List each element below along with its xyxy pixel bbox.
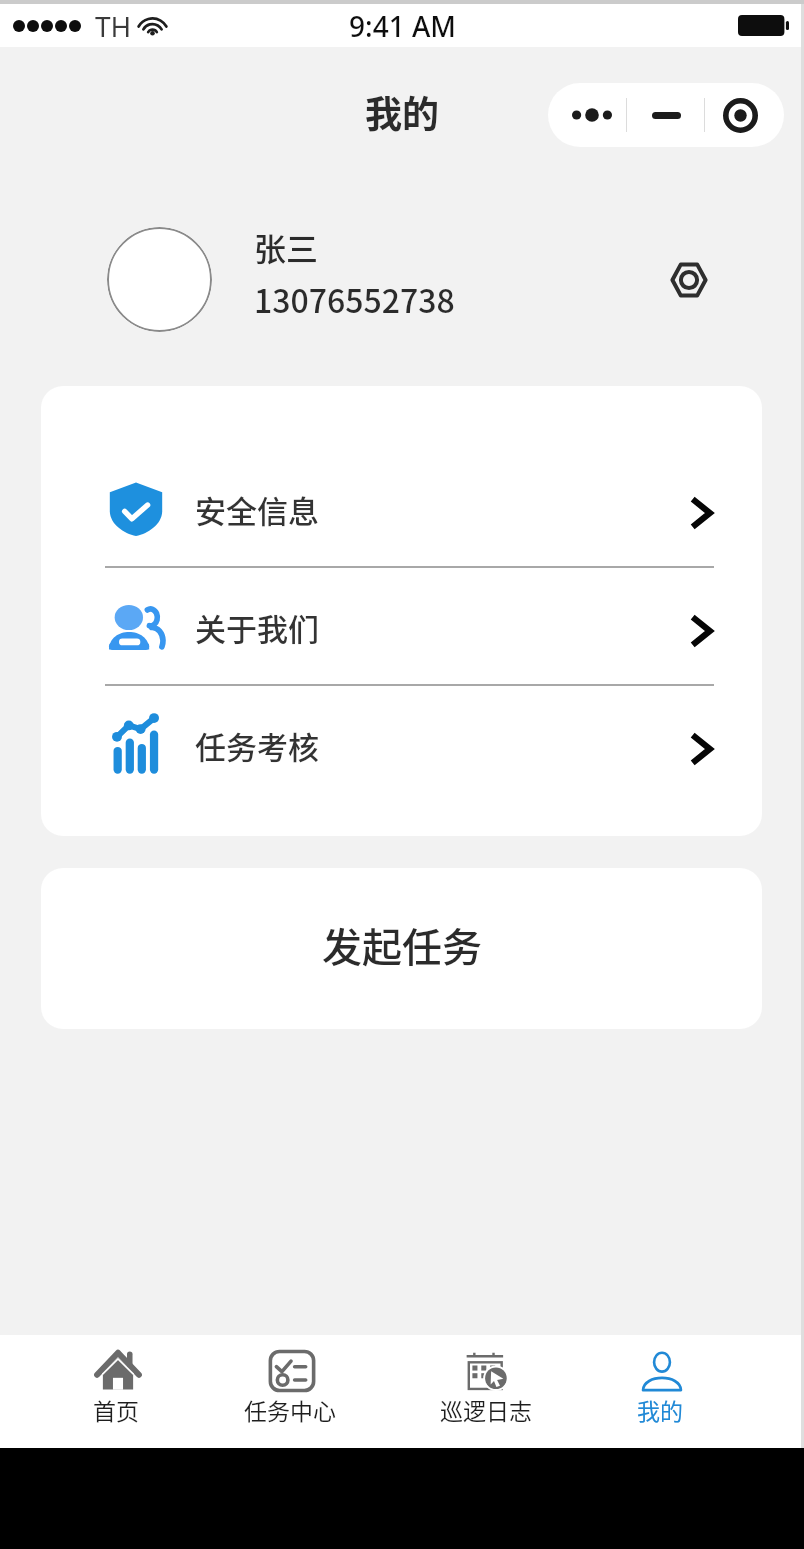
staticText: 安全信息 <box>195 487 319 532</box>
button[interactable]: More options <box>548 83 626 147</box>
staticText: 我的 <box>365 85 439 139</box>
button[interactable]: Home <box>41 1335 191 1448</box>
button[interactable]: Settings <box>651 244 723 316</box>
button[interactable]: Mine <box>585 1335 735 1448</box>
staticText: 任务中心 <box>244 1393 336 1426</box>
staticText: 13076552738 <box>254 276 455 322</box>
staticText: 我的 <box>637 1393 683 1426</box>
button[interactable]: Task center <box>215 1335 365 1448</box>
staticText: 发起任务 <box>322 916 482 974</box>
staticText: 9:41 AM <box>349 7 456 45</box>
staticText: TH <box>95 7 132 45</box>
staticText: 关于我们 <box>195 605 319 650</box>
staticText: 任务考核 <box>195 723 319 768</box>
button[interactable]: Minimize <box>627 83 705 147</box>
button[interactable]: Profile photo <box>107 227 212 332</box>
button[interactable]: Patrol log <box>411 1335 561 1448</box>
button[interactable]: 任务考核 <box>41 686 762 802</box>
button[interactable]: 发起任务 <box>41 868 762 1029</box>
staticText: 巡逻日志 <box>440 1393 532 1426</box>
staticText: 首页 <box>93 1393 139 1426</box>
button[interactable]: 关于我们 <box>41 568 762 684</box>
button[interactable]: Close <box>705 83 784 147</box>
staticText: 张三 <box>254 224 319 270</box>
button[interactable]: 安全信息 <box>41 450 762 566</box>
